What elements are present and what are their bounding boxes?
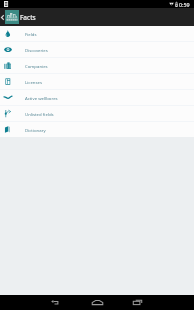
button[interactable]: Licenses (0, 74, 194, 89)
button[interactable]: Navigate up (0, 8, 19, 26)
button[interactable]: Back (42, 295, 68, 310)
button[interactable]: Discoveries (0, 42, 194, 57)
staticText: Unlisted fields (25, 111, 54, 117)
staticText: Active wellbores (25, 95, 58, 101)
staticText: Companies (25, 63, 48, 69)
button[interactable]: Active wellbores (0, 90, 194, 105)
staticText: Facts (20, 13, 36, 22)
button[interactable]: Recent apps (124, 295, 150, 310)
button[interactable]: Companies (0, 58, 194, 73)
staticText: Fields (25, 31, 37, 37)
button[interactable]: Dictionary (0, 122, 194, 137)
staticText: Discoveries (25, 47, 48, 53)
button[interactable]: Fields (0, 26, 194, 41)
button[interactable]: Unlisted fields (0, 106, 194, 121)
staticText: Licenses (25, 79, 43, 85)
staticText: 0:59 (179, 1, 190, 8)
button[interactable]: Home (84, 295, 110, 310)
staticText: Dictionary (25, 127, 46, 133)
